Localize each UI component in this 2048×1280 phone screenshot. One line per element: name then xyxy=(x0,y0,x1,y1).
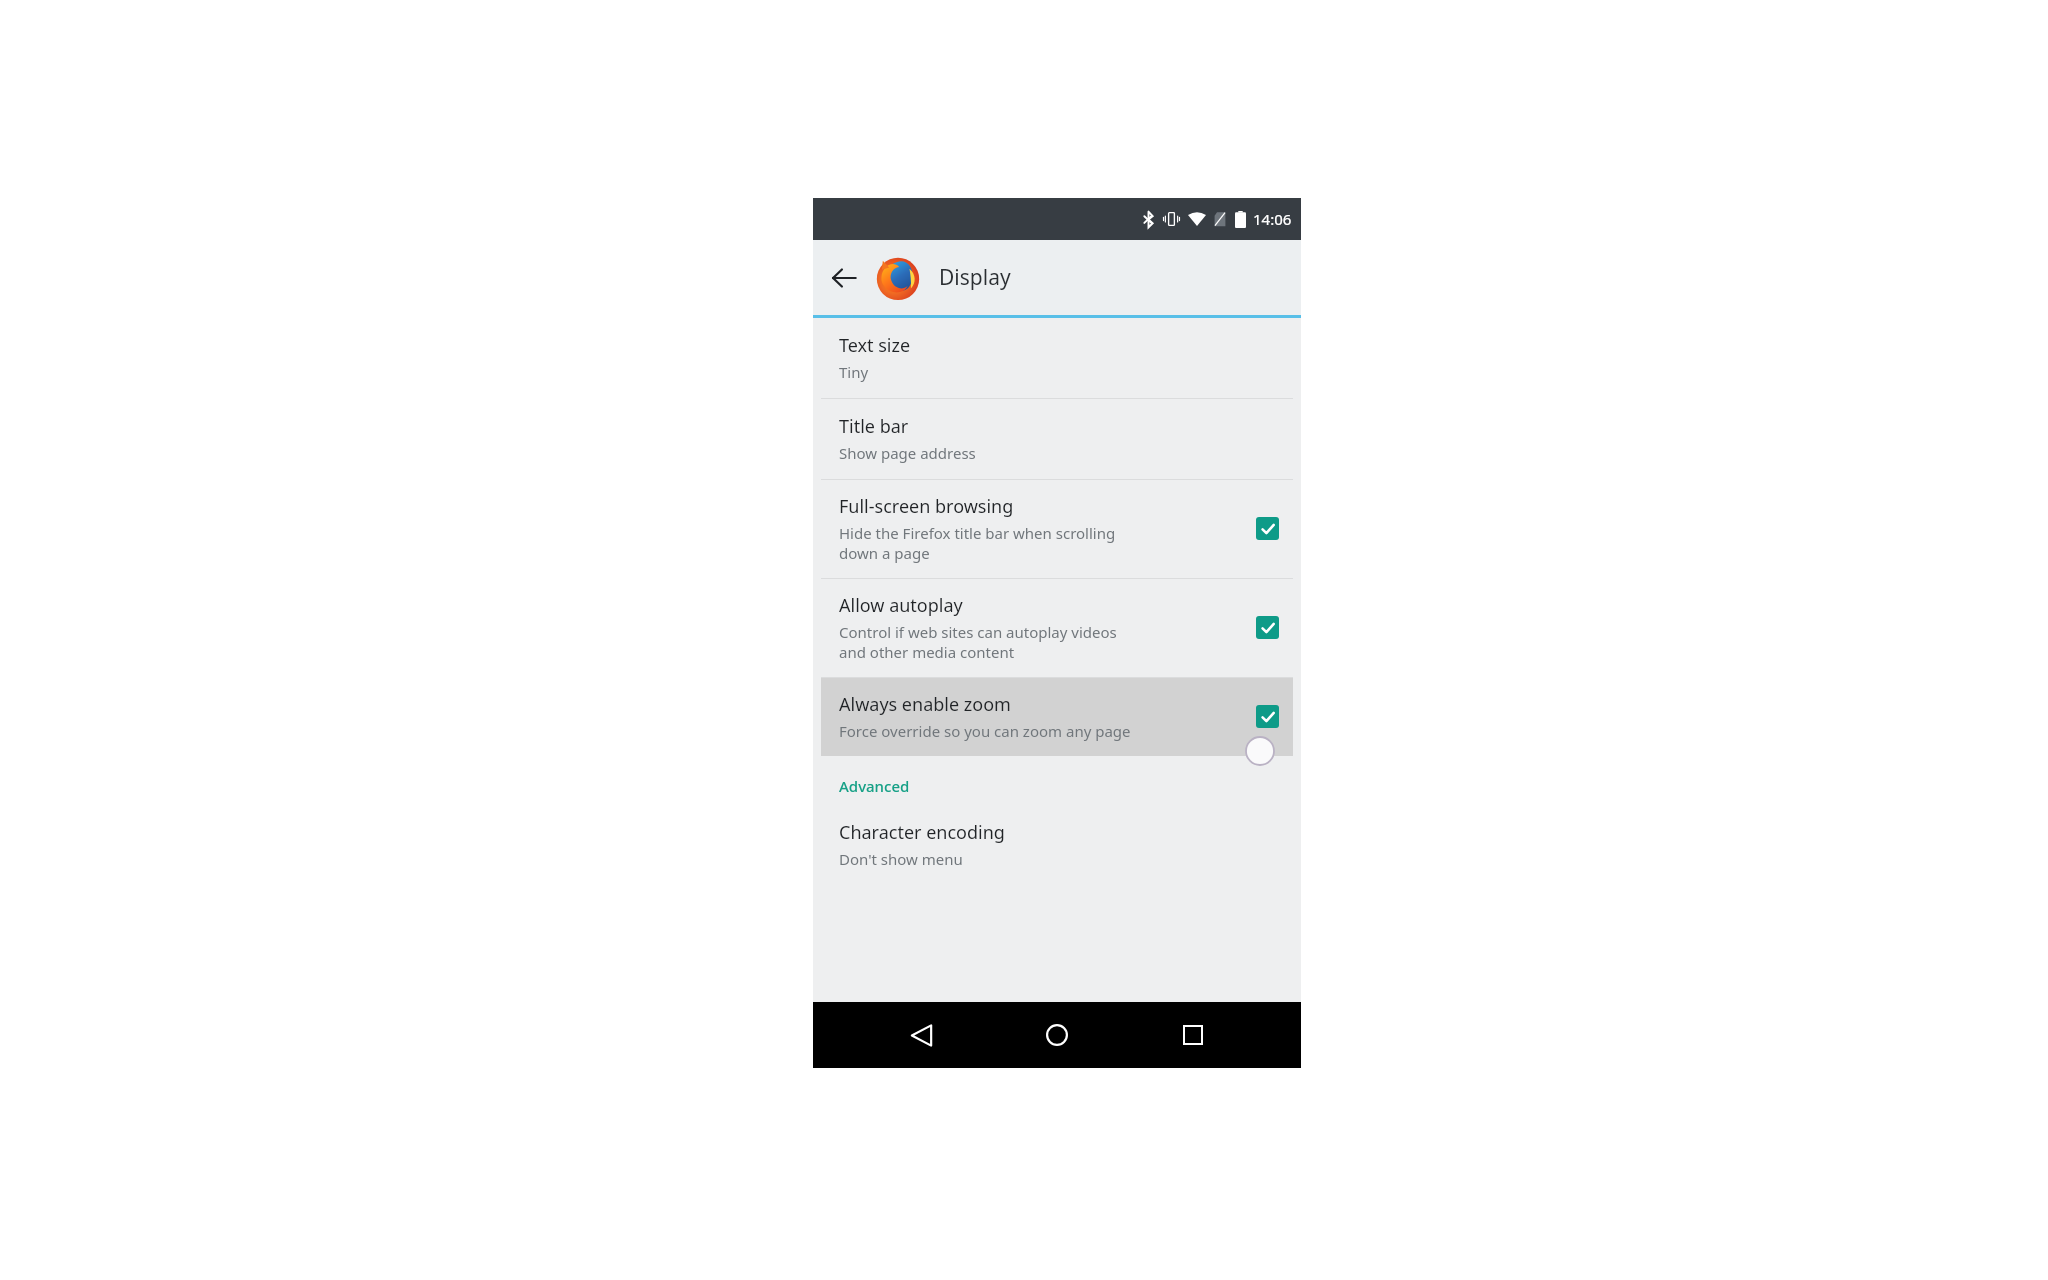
staticText: Force override so you can zoom any page xyxy=(839,721,1131,741)
staticText: Advanced xyxy=(839,776,910,796)
button[interactable]: Recent apps xyxy=(1165,1007,1221,1063)
button[interactable]: Always enable zoom, checked xyxy=(1256,705,1279,728)
button[interactable]: Text size xyxy=(813,318,1301,398)
staticText: Character encoding xyxy=(839,820,1005,845)
staticText: Control if web sites can autoplay videos… xyxy=(839,622,1117,662)
button[interactable]: Full-screen browsing xyxy=(813,480,1301,578)
button[interactable]: Character encoding xyxy=(813,805,1301,885)
staticText: Text size xyxy=(839,333,911,358)
button[interactable]: Full-screen browsing, checked xyxy=(1256,517,1279,540)
button[interactable]: Title bar xyxy=(813,399,1301,479)
staticText: Display xyxy=(939,263,1011,292)
button[interactable]: Always enable zoom xyxy=(821,678,1293,756)
staticText: Hide the Firefox title bar when scrollin… xyxy=(839,523,1116,563)
staticText: Tiny xyxy=(839,362,869,382)
staticText: Title bar xyxy=(839,414,909,439)
button[interactable]: Home xyxy=(1029,1007,1085,1063)
staticText: Allow autoplay xyxy=(839,593,963,618)
button[interactable]: Allow autoplay, checked xyxy=(1256,616,1279,639)
staticText: Full-screen browsing xyxy=(839,494,1014,519)
button[interactable]: Navigate up xyxy=(821,255,867,301)
button[interactable]: Allow autoplay xyxy=(813,579,1301,677)
staticText: 14:06 xyxy=(1253,209,1292,229)
staticText: Don't show menu xyxy=(839,849,963,869)
staticText: Always enable zoom xyxy=(839,692,1011,717)
button[interactable]: Back xyxy=(893,1007,949,1063)
staticText: Show page address xyxy=(839,443,976,463)
